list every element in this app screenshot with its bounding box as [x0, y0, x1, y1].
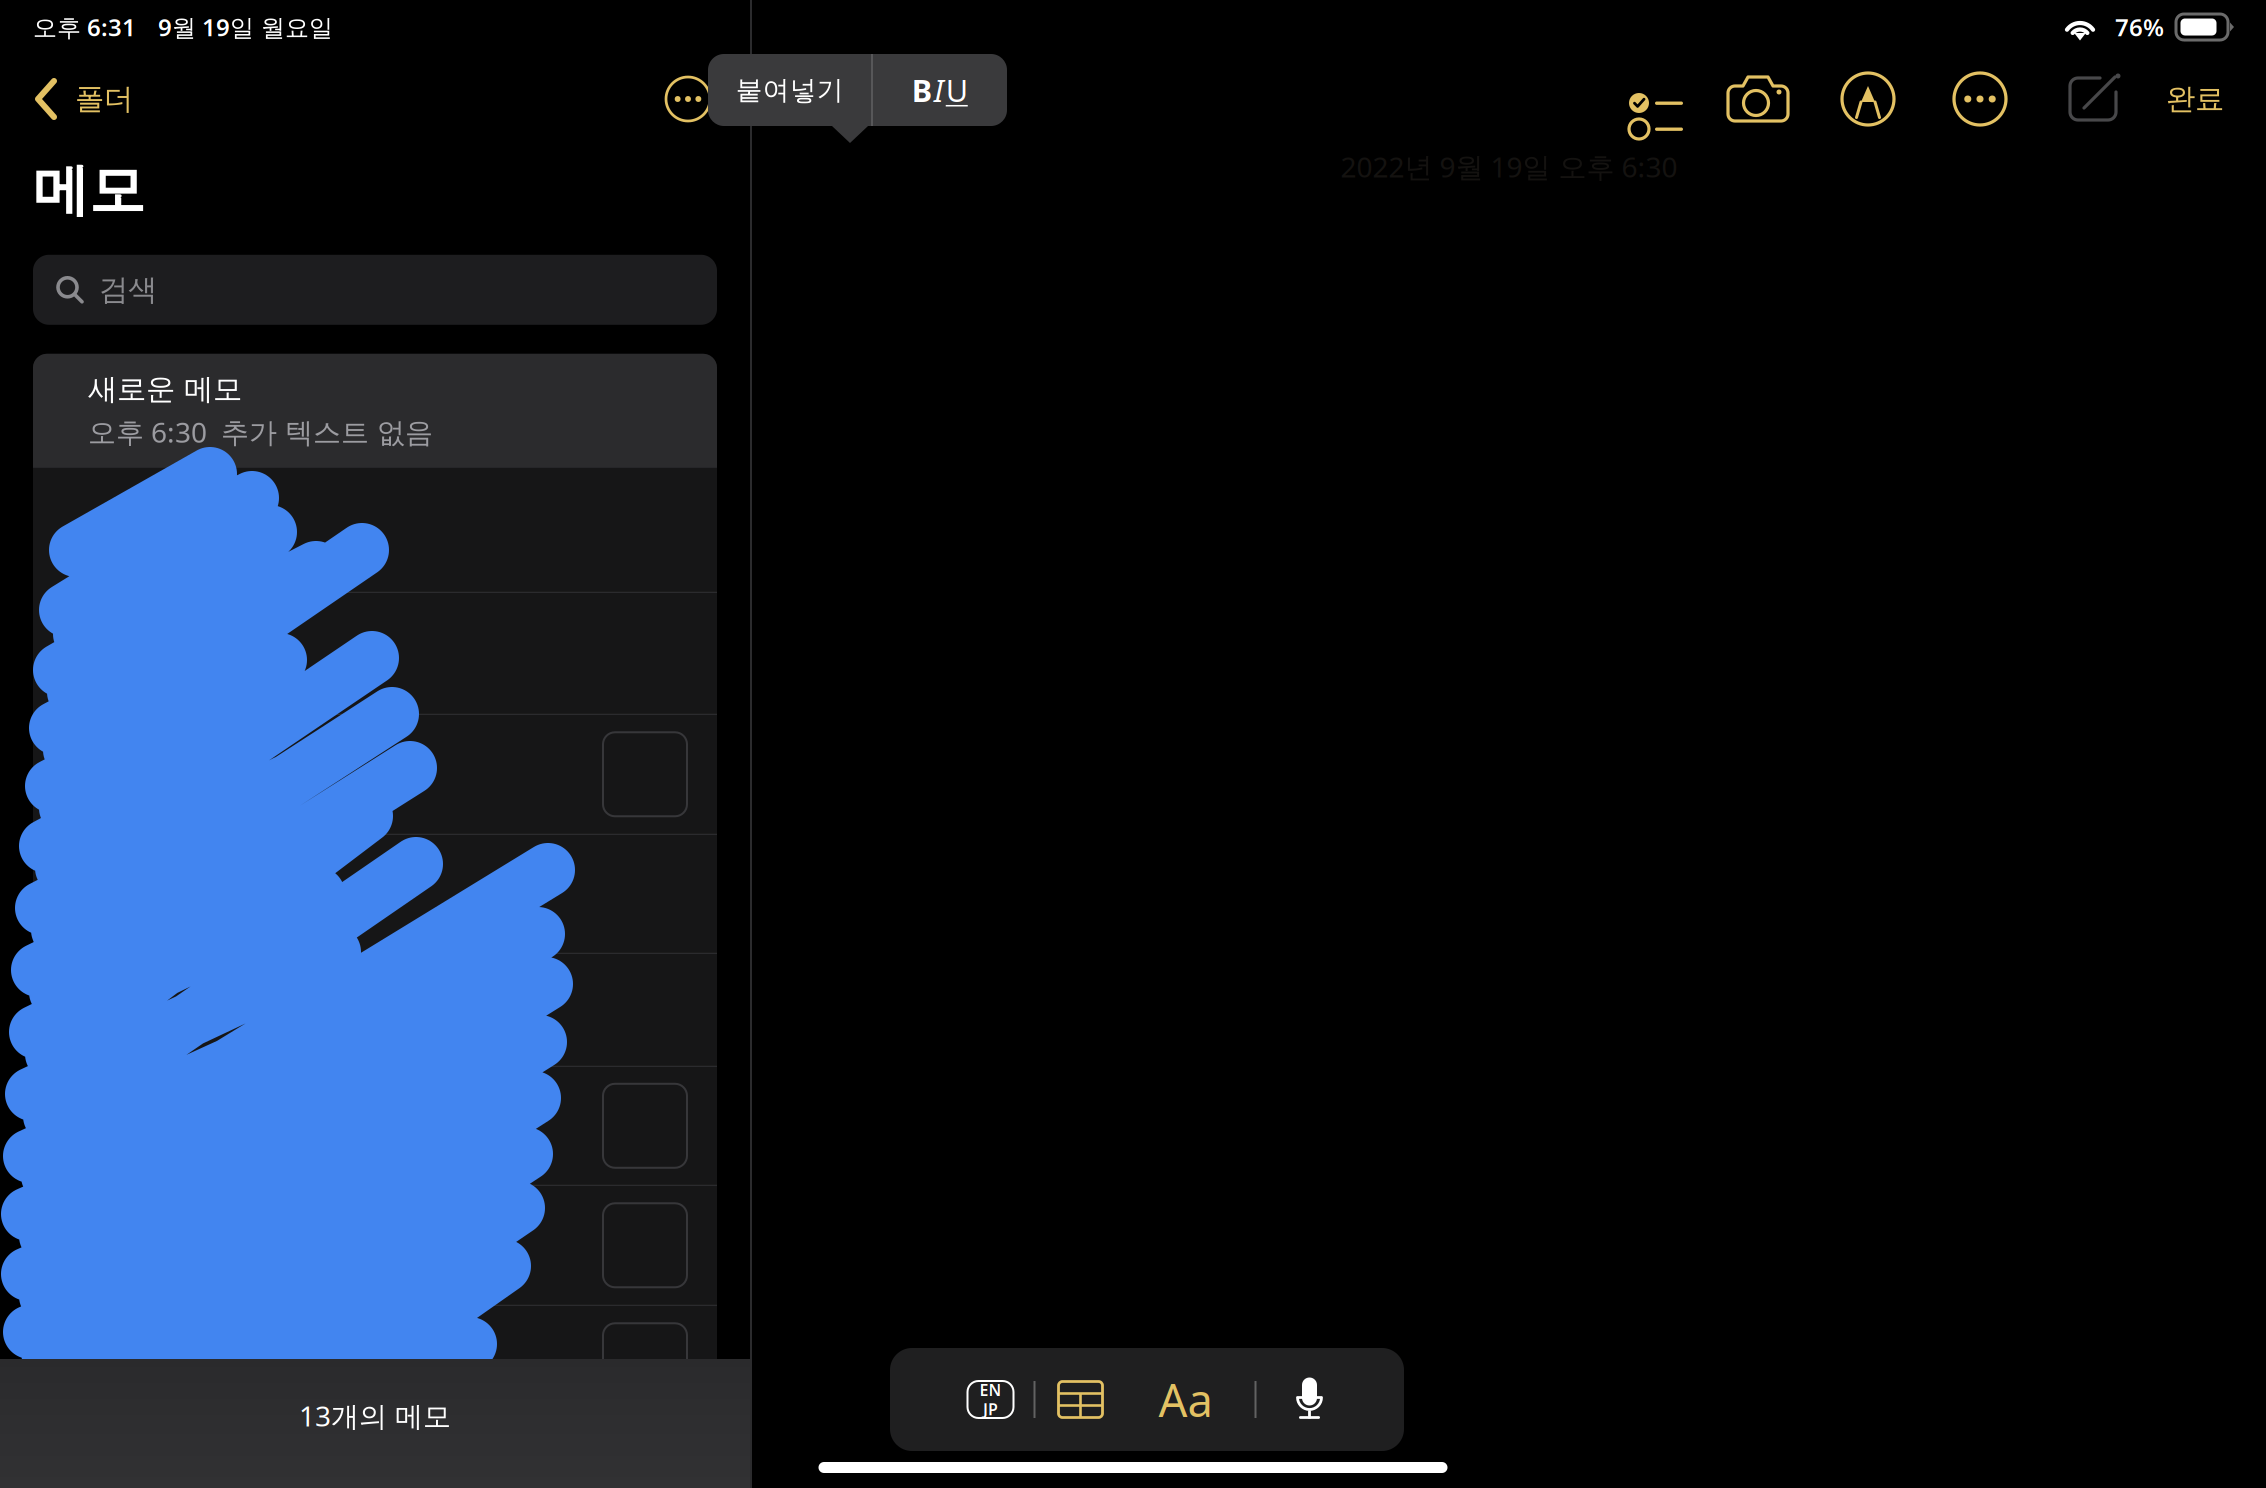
- button[interactable]: 받아쓰기: [1292, 1377, 1326, 1421]
- staticText: 13개의 메모: [299, 1397, 451, 1434]
- button[interactable]: 체크리스트: [1612, 72, 1670, 126]
- button[interactable]: [33, 954, 717, 1067]
- staticText: 9월 19일 월요일: [158, 11, 333, 43]
- button[interactable]: 마크업: [1842, 73, 1894, 125]
- staticText: 완료: [2166, 81, 2224, 117]
- button[interactable]: 더 보기: [1954, 73, 2006, 125]
- button[interactable]: [33, 1067, 717, 1186]
- button[interactable]: [33, 593, 717, 715]
- staticText: 오후 6:31: [33, 11, 136, 43]
- button[interactable]: 키보드 언어: [967, 1381, 1013, 1418]
- button[interactable]: 폴더: [33, 64, 147, 134]
- staticText: 메모: [33, 156, 145, 225]
- staticText: 붙여넣기: [736, 74, 844, 106]
- staticText: 폴더: [75, 81, 133, 117]
- staticText: 오후 6:30 추가 텍스트 없음: [88, 413, 433, 450]
- button[interactable]: [33, 1186, 717, 1306]
- button[interactable]: [33, 1426, 717, 1488]
- button[interactable]: 붙여넣기: [708, 54, 871, 126]
- staticText: EN: [979, 1379, 1001, 1400]
- button[interactable]: [33, 468, 717, 593]
- staticText: I: [934, 70, 944, 110]
- staticText: 검색: [99, 272, 157, 308]
- button[interactable]: 카메라: [1726, 73, 1790, 125]
- staticText: Aa: [1158, 1369, 1212, 1430]
- button[interactable]: B: [873, 54, 1007, 126]
- button[interactable]: [33, 1306, 717, 1426]
- staticText: 2022년 9월 19일 오후 6:30: [1340, 148, 1677, 185]
- button[interactable]: 서식: [1158, 1369, 1212, 1430]
- staticText: 76%: [2115, 11, 2164, 43]
- button[interactable]: 새로운 메모: [33, 354, 717, 468]
- button[interactable]: [33, 715, 717, 835]
- button[interactable]: 새로운 메모: [2066, 72, 2120, 126]
- staticText: B: [912, 70, 932, 110]
- staticText: 새로운 메모: [88, 371, 242, 407]
- button[interactable]: [33, 835, 717, 954]
- button[interactable]: 표: [1058, 1381, 1102, 1417]
- staticText: JP: [983, 1398, 998, 1420]
- button[interactable]: 더 보기: [656, 67, 720, 131]
- staticText: U: [946, 70, 968, 110]
- button[interactable]: 완료: [2160, 71, 2230, 127]
